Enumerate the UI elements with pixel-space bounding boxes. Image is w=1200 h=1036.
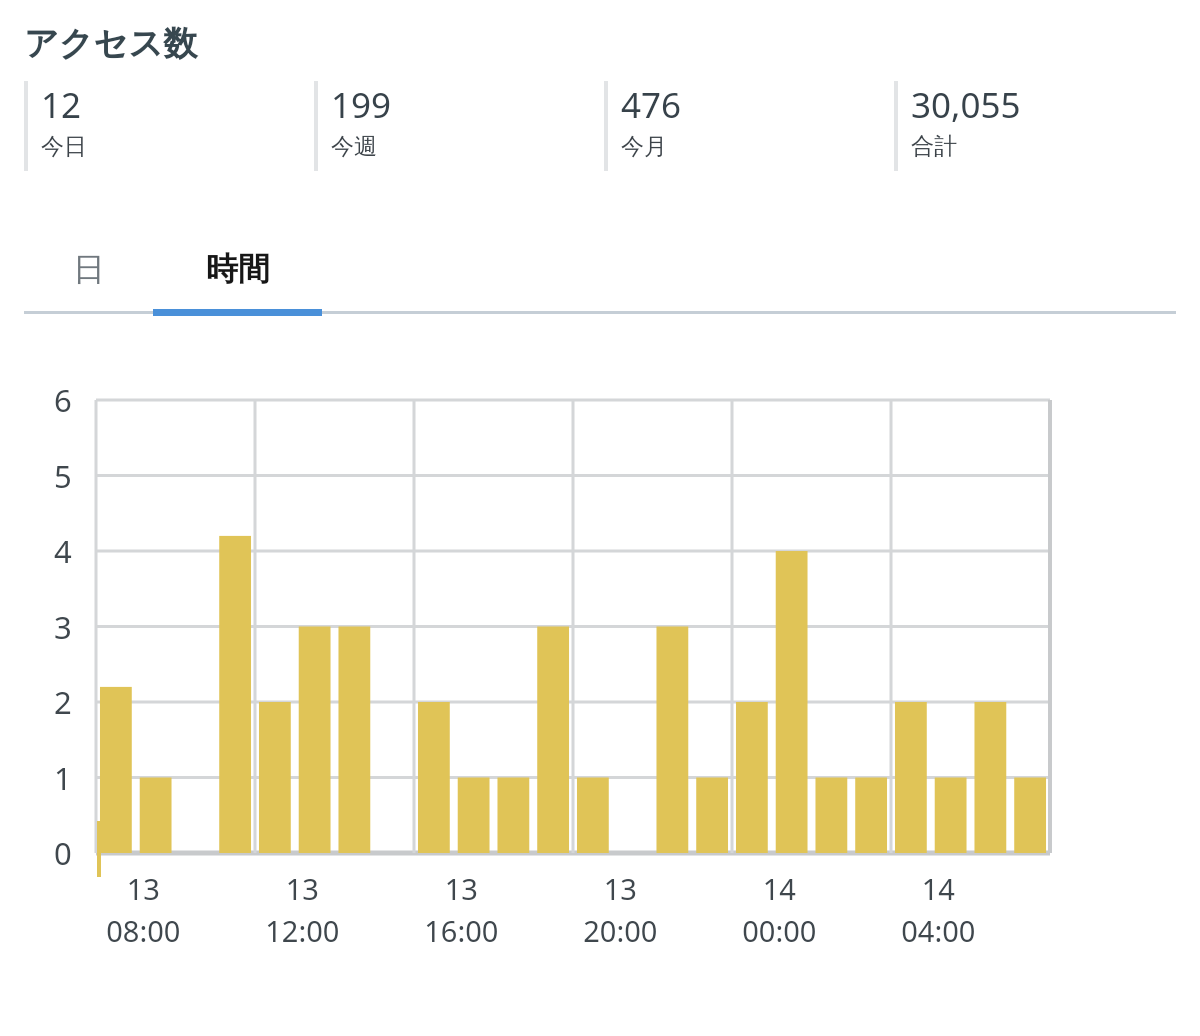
staticText: 時間 [206, 249, 270, 289]
staticText: 今月 [621, 132, 667, 161]
staticText: 476 [621, 81, 682, 129]
staticText: 今日 [41, 132, 87, 161]
button[interactable]: 476 [604, 81, 894, 171]
button[interactable]: 199 [314, 81, 604, 171]
staticText: アクセス数 [24, 22, 198, 65]
button[interactable]: 30,055 [894, 81, 1184, 171]
staticText: 199 [331, 81, 392, 129]
staticText: 日 [73, 249, 105, 289]
staticText: 12 [41, 81, 82, 129]
staticText: 今週 [331, 132, 377, 161]
button[interactable]: 日 [24, 229, 153, 309]
button[interactable]: 12 [24, 81, 314, 171]
staticText: 合計 [911, 132, 957, 161]
staticText: 30,055 [911, 81, 1021, 129]
button[interactable]: 時間 [153, 229, 322, 309]
